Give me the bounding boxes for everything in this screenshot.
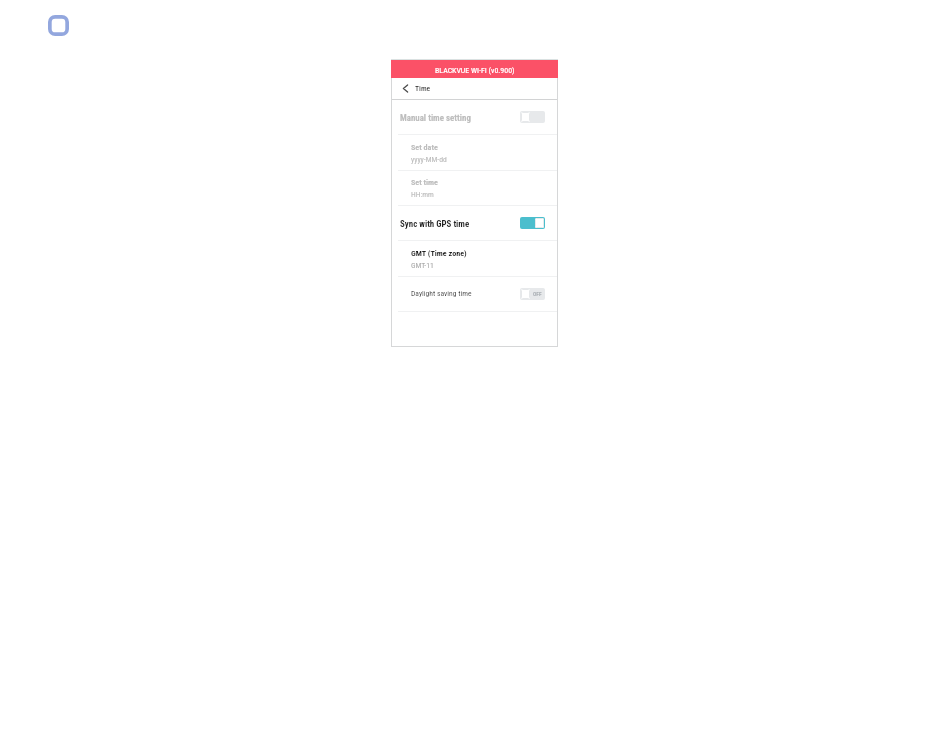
staticText: Set date — [411, 142, 438, 151]
button[interactable]: Sync with GPS time — [391, 206, 558, 240]
staticText: Sync with GPS time — [400, 219, 470, 229]
staticText: OFF — [533, 291, 542, 297]
button[interactable]: Set time — [391, 171, 558, 205]
button[interactable]: BlackVue app icon — [48, 15, 69, 36]
button[interactable]: Manual time setting — [391, 100, 558, 134]
staticText: BLACKVUE WI-FI (v0.900) — [435, 66, 515, 75]
staticText: Set time — [411, 177, 438, 186]
button[interactable]: Sync with GPS time switch, on — [520, 217, 545, 229]
button[interactable]: Daylight saving time — [391, 277, 558, 311]
button[interactable]: GMT (Time zone) — [391, 241, 558, 276]
button[interactable]: Manual time setting switch, off — [520, 111, 545, 123]
button[interactable]: Time — [391, 78, 558, 99]
staticText: GMT (Time zone) — [411, 248, 467, 257]
staticText: GMT-11 — [411, 261, 434, 270]
staticText: HH:mm — [411, 190, 434, 199]
staticText: Manual time setting — [400, 113, 471, 123]
button[interactable]: Set date — [391, 135, 558, 170]
staticText: yyyy-MM-dd — [411, 155, 447, 164]
button[interactable]: Daylight saving time switch, off — [520, 288, 545, 300]
staticText: Daylight saving time — [411, 289, 472, 298]
staticText: Time — [415, 84, 431, 93]
